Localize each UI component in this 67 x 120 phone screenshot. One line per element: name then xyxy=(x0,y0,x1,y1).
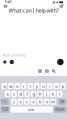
staticText: u xyxy=(42,83,44,89)
button[interactable]: f xyxy=(24,91,30,97)
staticText: h xyxy=(39,91,41,96)
staticText: i xyxy=(49,83,50,89)
staticText: g xyxy=(32,91,34,96)
button[interactable]: s xyxy=(11,91,17,97)
button[interactable]: r xyxy=(21,83,26,89)
button[interactable]: p xyxy=(60,83,65,89)
button[interactable]: o xyxy=(54,83,59,89)
button[interactable]: Delete xyxy=(58,99,66,105)
staticText: w xyxy=(9,83,12,89)
button[interactable]: Tools xyxy=(9,60,14,64)
button[interactable]: w xyxy=(8,83,13,89)
staticText: n xyxy=(45,99,47,104)
button[interactable]: Search xyxy=(52,69,56,73)
button[interactable]: l xyxy=(57,91,62,97)
button[interactable]: g xyxy=(31,91,36,97)
button[interactable]: Return xyxy=(54,106,66,113)
staticText: e xyxy=(16,83,18,89)
button[interactable]: v xyxy=(31,99,36,105)
button[interactable]: Shift xyxy=(1,99,9,105)
button[interactable]: i xyxy=(47,83,52,89)
staticText: ⇧ xyxy=(4,100,6,103)
button[interactable]: Sidebar xyxy=(3,4,8,8)
staticText: r xyxy=(23,83,25,89)
staticText: x xyxy=(19,99,21,104)
staticText: d xyxy=(19,91,21,96)
staticText: a xyxy=(6,91,8,96)
button[interactable]: n xyxy=(44,99,49,105)
button[interactable]: Photos xyxy=(38,69,42,73)
button[interactable]: k xyxy=(50,91,56,97)
button[interactable]: y xyxy=(34,83,39,89)
staticText: p xyxy=(62,83,64,89)
staticText: j xyxy=(46,91,47,96)
button[interactable]: c xyxy=(24,99,30,105)
staticText: c xyxy=(26,99,28,104)
button[interactable]: Add attachment xyxy=(3,60,7,64)
button[interactable]: b xyxy=(37,99,43,105)
staticText: return xyxy=(55,108,64,111)
button[interactable]: Numbers xyxy=(1,106,9,113)
staticText: ⌫ xyxy=(60,100,64,103)
button[interactable]: m xyxy=(50,99,56,105)
staticText: q xyxy=(3,83,5,89)
button[interactable]: h xyxy=(37,91,43,97)
button[interactable]: a xyxy=(5,91,10,97)
staticText: k xyxy=(52,91,54,96)
staticText: b xyxy=(39,99,41,104)
staticText: 9:41 xyxy=(5,0,12,4)
button[interactable]: Space xyxy=(10,106,53,113)
button[interactable]: j xyxy=(44,91,49,97)
button[interactable]: x xyxy=(18,99,23,105)
staticText: t xyxy=(30,83,31,89)
staticText: m xyxy=(51,99,55,104)
staticText: y xyxy=(36,83,38,89)
staticText: space xyxy=(28,108,35,111)
staticText: o xyxy=(55,83,57,89)
staticText: l xyxy=(59,91,60,96)
staticText: f xyxy=(26,91,27,96)
staticText: z xyxy=(13,99,15,104)
staticText: s xyxy=(13,91,15,96)
button[interactable]: e xyxy=(15,83,20,89)
button[interactable]: New chat xyxy=(59,4,64,8)
staticText: v xyxy=(32,99,34,104)
button[interactable]: Files xyxy=(45,69,49,73)
staticText: Ask anything xyxy=(3,52,25,58)
button[interactable]: Voice mode xyxy=(57,59,64,65)
button[interactable]: u xyxy=(41,83,46,89)
button[interactable]: d xyxy=(18,91,23,97)
staticText: What can I help with? xyxy=(8,7,58,14)
button[interactable]: t xyxy=(28,83,33,89)
staticText: 123 xyxy=(2,108,8,111)
button[interactable]: z xyxy=(11,99,17,105)
button[interactable]: q xyxy=(2,83,7,89)
